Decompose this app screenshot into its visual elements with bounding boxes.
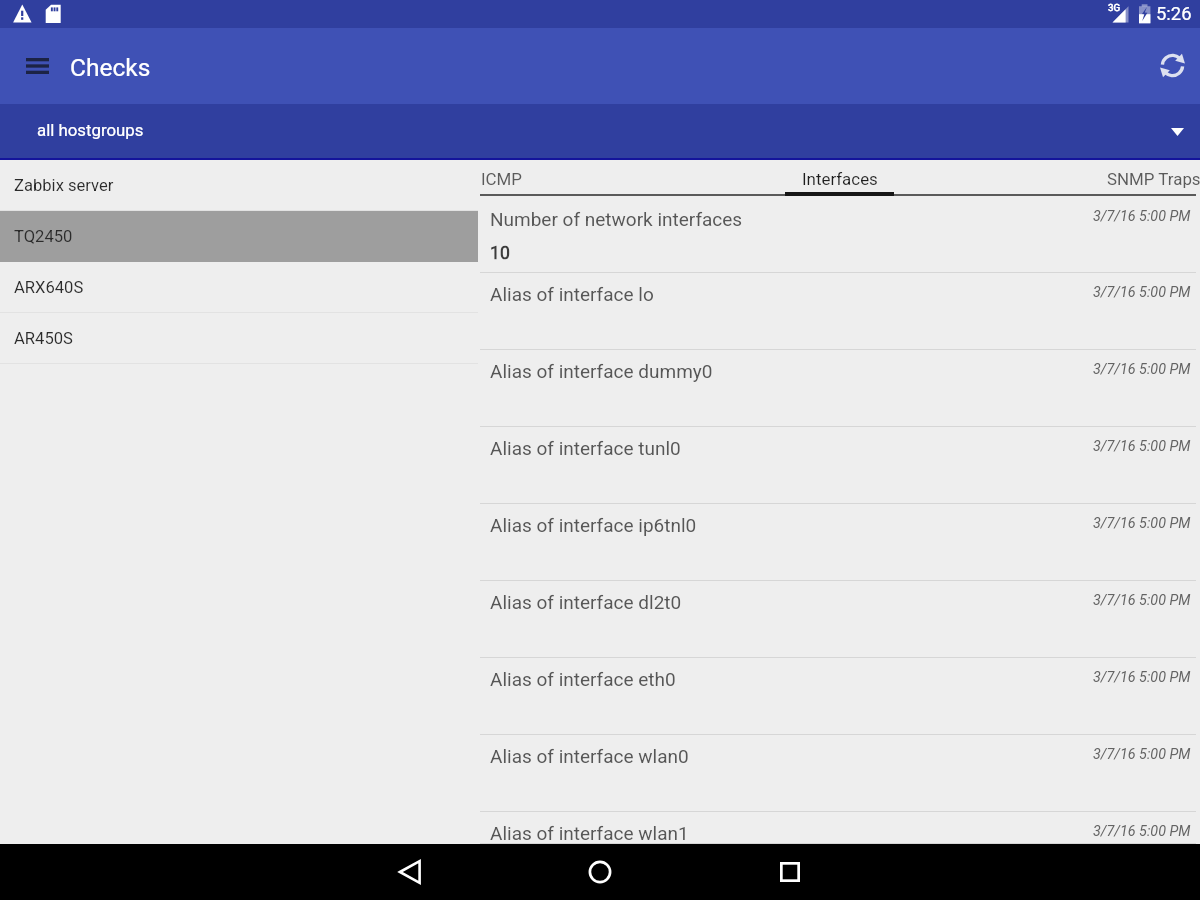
button[interactable]: Alias of interface tunl0 xyxy=(478,427,1200,504)
staticText: Alias of interface wlan1 xyxy=(490,822,689,844)
staticText: Alias of interface tunl0 xyxy=(490,437,681,459)
staticText: 3/7/16 5:00 PM xyxy=(1093,669,1191,686)
button[interactable]: Recent apps xyxy=(762,844,818,900)
staticText: AR450S xyxy=(14,329,73,348)
staticText: ICMP xyxy=(481,169,522,189)
button[interactable]: Alias of interface dummy0 xyxy=(478,350,1200,427)
staticText: TQ2450 xyxy=(14,227,73,246)
button[interactable]: Alias of interface eth0 xyxy=(478,658,1200,735)
button[interactable]: Back xyxy=(382,844,438,900)
button[interactable]: Zabbix server xyxy=(0,160,478,211)
staticText: Alias of interface dummy0 xyxy=(490,360,713,382)
staticText: 3/7/16 5:00 PM xyxy=(1093,284,1191,301)
button[interactable]: Open navigation drawer xyxy=(9,38,65,94)
staticText: Number of network interfaces xyxy=(490,208,743,230)
staticText: all hostgroups xyxy=(37,120,144,140)
button[interactable]: all hostgroups xyxy=(0,104,1200,158)
button[interactable]: ARX640S xyxy=(0,262,478,313)
button[interactable]: SNMP Traps xyxy=(1040,160,1200,196)
button[interactable]: Number of network interfaces xyxy=(478,196,1200,273)
staticText: 3/7/16 5:00 PM xyxy=(1093,515,1191,532)
staticText: Alias of interface wlan0 xyxy=(490,745,689,767)
staticText: Interfaces xyxy=(802,169,878,189)
staticText: Zabbix server xyxy=(14,176,114,195)
button[interactable]: Alias of interface dl2t0 xyxy=(478,581,1200,658)
button[interactable]: Alias of interface ip6tnl0 xyxy=(478,504,1200,581)
button[interactable]: TQ2450 xyxy=(0,211,478,262)
staticText: 5:26 xyxy=(1156,3,1192,25)
staticText: Alias of interface eth0 xyxy=(490,668,676,690)
button[interactable]: AR450S xyxy=(0,313,478,364)
button[interactable]: Home xyxy=(572,844,628,900)
staticText: 3/7/16 5:00 PM xyxy=(1093,361,1191,378)
button[interactable]: Alias of interface wlan1 xyxy=(478,812,1200,844)
staticText: Alias of interface dl2t0 xyxy=(490,591,682,613)
button[interactable]: Refresh xyxy=(1144,37,1200,93)
staticText: 3/7/16 5:00 PM xyxy=(1093,592,1191,609)
staticText: 3/7/16 5:00 PM xyxy=(1093,746,1191,763)
staticText: 3/7/16 5:00 PM xyxy=(1093,208,1191,225)
staticText: 3/7/16 5:00 PM xyxy=(1093,438,1191,455)
staticText: 10 xyxy=(490,243,510,264)
button[interactable]: Interfaces xyxy=(785,160,894,196)
staticText: Alias of interface lo xyxy=(490,283,654,305)
button[interactable]: Alias of interface wlan0 xyxy=(478,735,1200,812)
staticText: Checks xyxy=(70,53,151,82)
staticText: SNMP Traps xyxy=(1107,169,1200,189)
staticText: ARX640S xyxy=(14,278,84,297)
button[interactable]: Alias of interface lo xyxy=(478,273,1200,350)
staticText: 3G xyxy=(1108,2,1121,13)
staticText: 3/7/16 5:00 PM xyxy=(1093,823,1191,840)
button[interactable]: ICMP xyxy=(481,160,641,196)
staticText: Alias of interface ip6tnl0 xyxy=(490,514,697,536)
